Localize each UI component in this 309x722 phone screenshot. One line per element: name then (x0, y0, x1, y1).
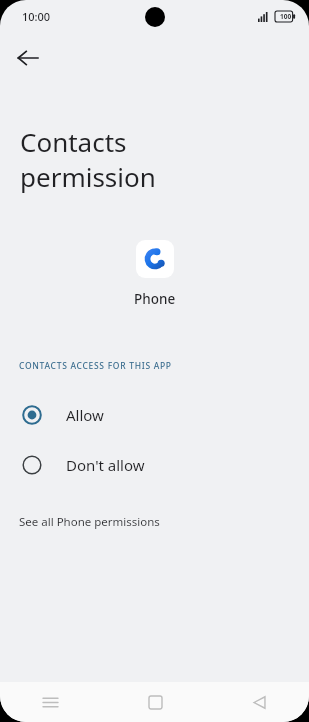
button[interactable]: Recents (28, 682, 72, 722)
staticText: See all Phone permissions (19, 514, 160, 530)
staticText: Don't allow (66, 455, 145, 475)
staticText: permission (20, 159, 156, 194)
staticText: 10:00 (22, 9, 51, 24)
staticText: Allow (66, 405, 104, 425)
button[interactable]: Home (133, 682, 177, 722)
staticText: Contacts (20, 124, 127, 159)
button[interactable]: Back (237, 682, 281, 722)
button[interactable]: Don't allow (0, 440, 309, 490)
button[interactable]: Back (6, 36, 50, 80)
staticText: CONTACTS ACCESS FOR THIS APP (19, 360, 172, 372)
staticText: 100 (280, 12, 292, 21)
button[interactable]: See all Phone permissions (0, 512, 309, 536)
staticText: Phone (134, 290, 176, 308)
button[interactable]: Allow (0, 390, 309, 440)
